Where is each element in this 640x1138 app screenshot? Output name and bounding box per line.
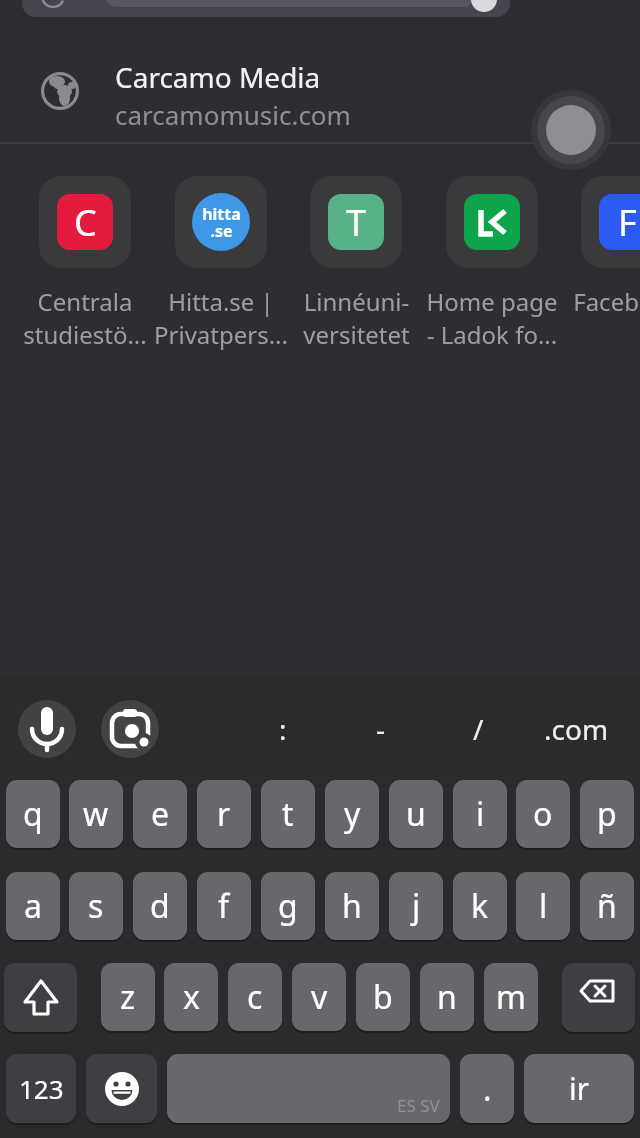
staticText: w [83, 792, 109, 836]
button[interactable]: e [133, 780, 187, 848]
staticText: b [373, 975, 393, 1019]
staticText: t [282, 792, 294, 836]
button[interactable] [18, 700, 76, 758]
button[interactable]: m [484, 963, 538, 1031]
staticText: v [311, 975, 328, 1019]
staticText: ES SV [397, 1094, 440, 1117]
button[interactable]: f [197, 872, 251, 940]
button[interactable]: z [101, 963, 155, 1031]
button[interactable]: ñ [580, 872, 634, 940]
staticText: y [344, 792, 361, 836]
staticText: C [74, 198, 97, 247]
button[interactable]: F [581, 176, 640, 268]
staticText: ir [569, 1068, 590, 1109]
staticText: F [618, 198, 637, 247]
staticText: Centrala studiestö... [23, 285, 147, 351]
button[interactable] [86, 1054, 157, 1123]
button[interactable]: d [133, 872, 187, 940]
button[interactable]: Carcamo Media [115, 58, 321, 96]
button[interactable]: ir [524, 1054, 634, 1123]
button[interactable]: v [292, 963, 346, 1031]
button[interactable]: y [325, 780, 379, 848]
staticText: Linnéuni- versitetet [303, 285, 410, 351]
staticText: : [279, 710, 287, 748]
button[interactable]: w [69, 780, 123, 848]
staticText: hitta .se [202, 203, 241, 241]
staticText: 123 [19, 1071, 64, 1106]
staticText: Carcamo Media [115, 58, 321, 96]
staticText: h [342, 884, 362, 928]
button[interactable]: g [261, 872, 315, 940]
staticText: r [217, 792, 231, 836]
button[interactable] [22, 0, 510, 17]
staticText: z [120, 975, 136, 1019]
staticText: u [406, 792, 426, 836]
button[interactable]: h [325, 872, 379, 940]
button[interactable]: r [197, 780, 251, 848]
staticText: ñ [597, 884, 617, 928]
staticText: .com [544, 710, 609, 748]
staticText: a [24, 884, 42, 928]
staticText: k [471, 884, 489, 928]
staticText: . [483, 1067, 492, 1111]
staticText: o [533, 792, 553, 836]
button[interactable]: C [39, 176, 131, 268]
button[interactable]: c [228, 963, 282, 1031]
button[interactable]: x [164, 963, 218, 1031]
staticText: carcamomusic.com [115, 97, 351, 132]
button[interactable]: i [453, 780, 507, 848]
staticText: c [247, 975, 263, 1019]
button[interactable] [446, 176, 538, 268]
staticText: q [23, 792, 43, 836]
button[interactable]: n [420, 963, 474, 1031]
staticText: g [278, 884, 298, 928]
staticText: s [88, 884, 104, 928]
staticText: x [183, 975, 200, 1019]
button[interactable]: a [6, 872, 60, 940]
button[interactable]: u [389, 780, 443, 848]
button[interactable] [101, 700, 159, 758]
button[interactable]: p [580, 780, 634, 848]
staticText: - [376, 710, 386, 748]
button[interactable]: ES SV [167, 1054, 450, 1123]
button[interactable]: / [433, 705, 523, 753]
button[interactable]: T [310, 176, 402, 268]
staticText: f [218, 884, 230, 928]
button[interactable] [0, 18, 640, 142]
staticText: l [539, 884, 548, 928]
staticText: j [412, 884, 421, 928]
button[interactable]: k [453, 872, 507, 940]
button[interactable]: t [261, 780, 315, 848]
button[interactable] [531, 90, 611, 170]
staticText: Home page - Ladok fo... [426, 285, 558, 351]
button[interactable]: .com [531, 705, 621, 753]
staticText: Hitta.se | Privatpers... [154, 285, 288, 351]
button[interactable]: - [336, 705, 426, 753]
button[interactable]: l [516, 872, 570, 940]
button[interactable]: j [389, 872, 443, 940]
staticText: i [476, 792, 485, 836]
button[interactable]: . [460, 1054, 514, 1123]
staticText: / [473, 710, 484, 748]
staticText: T [346, 198, 367, 247]
button[interactable]: s [69, 872, 123, 940]
staticText: n [437, 975, 457, 1019]
button[interactable] [562, 963, 635, 1032]
button[interactable]: o [516, 780, 570, 848]
staticText: d [150, 884, 170, 928]
button[interactable]: 123 [6, 1054, 76, 1123]
staticText: e [151, 792, 170, 836]
staticText: p [597, 792, 617, 836]
staticText: Facebook [573, 285, 640, 318]
button[interactable]: q [6, 780, 60, 848]
staticText: m [496, 975, 526, 1019]
button[interactable]: hitta .se [175, 176, 267, 268]
button[interactable] [4, 963, 77, 1032]
button[interactable]: : [238, 705, 328, 753]
button[interactable]: b [356, 963, 410, 1031]
